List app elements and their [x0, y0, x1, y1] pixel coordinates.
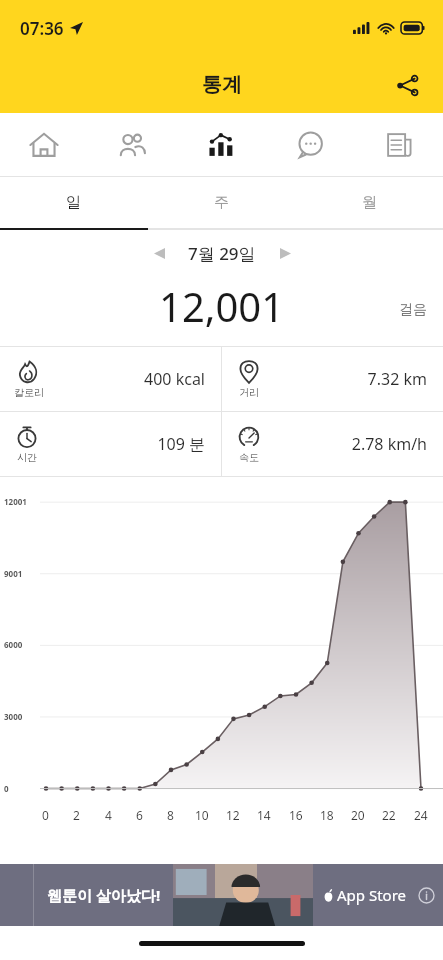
staticText: 2.78 km/h [351, 433, 427, 455]
staticText: 일 [66, 193, 81, 212]
staticText: 9001 [4, 568, 23, 579]
button[interactable]: Previous day [142, 236, 176, 270]
staticText: 7월 29일 [188, 242, 256, 265]
staticText: 웹툰이 살아났다! [47, 885, 161, 905]
button[interactable]: Statistics [176, 113, 265, 176]
staticText: 109 분 [157, 433, 205, 455]
button[interactable]: 속도 [222, 412, 443, 476]
staticText: App Store [337, 885, 407, 905]
staticText: 3000 [4, 711, 23, 722]
button[interactable]: 시간 [0, 412, 221, 476]
staticText: 10 [195, 807, 209, 823]
button[interactable]: Ad info [415, 884, 437, 906]
button[interactable]: 월 [295, 177, 443, 228]
button[interactable]: 칼로리 [0, 347, 221, 411]
button[interactable]: Friends [88, 113, 176, 176]
staticText: 8 [167, 807, 174, 823]
button[interactable]: 웹툰이 살아났다! [0, 864, 443, 926]
staticText: 18 [320, 807, 334, 823]
staticText: 6 [136, 807, 143, 823]
staticText: 20 [351, 807, 365, 823]
button[interactable]: 주 [147, 177, 295, 228]
staticText: 0 [4, 783, 9, 794]
staticText: 16 [289, 807, 303, 823]
staticText: 400 kcal [144, 368, 205, 390]
button[interactable]: Home [0, 113, 88, 176]
staticText: 12,001 [159, 279, 285, 333]
button[interactable]: 일 [0, 177, 147, 228]
staticText: 2 [73, 807, 80, 823]
button[interactable]: Messages [265, 113, 354, 176]
staticText: 칼로리 [14, 386, 44, 399]
button[interactable]: 거리 [222, 347, 443, 411]
button[interactable]: News [354, 113, 443, 176]
staticText: 4 [105, 807, 112, 823]
staticText: 24 [414, 807, 428, 823]
staticText: 속도 [239, 451, 259, 464]
staticText: 14 [257, 807, 271, 823]
staticText: 통계 [202, 72, 242, 97]
staticText: 주 [214, 193, 229, 212]
staticText: 12001 [4, 496, 27, 507]
staticText: 6000 [4, 639, 23, 650]
staticText: 월 [362, 193, 377, 212]
staticText: 시간 [17, 451, 37, 464]
staticText: 12 [226, 807, 240, 823]
staticText: 걸음 [399, 301, 427, 319]
staticText: 07:36 [20, 17, 64, 40]
staticText: 0 [42, 807, 49, 823]
button[interactable]: Share [385, 63, 429, 107]
staticText: 22 [382, 807, 396, 823]
button[interactable]: Next day [268, 236, 302, 270]
staticText: 7.32 km [367, 368, 427, 390]
staticText: 거리 [239, 386, 259, 399]
